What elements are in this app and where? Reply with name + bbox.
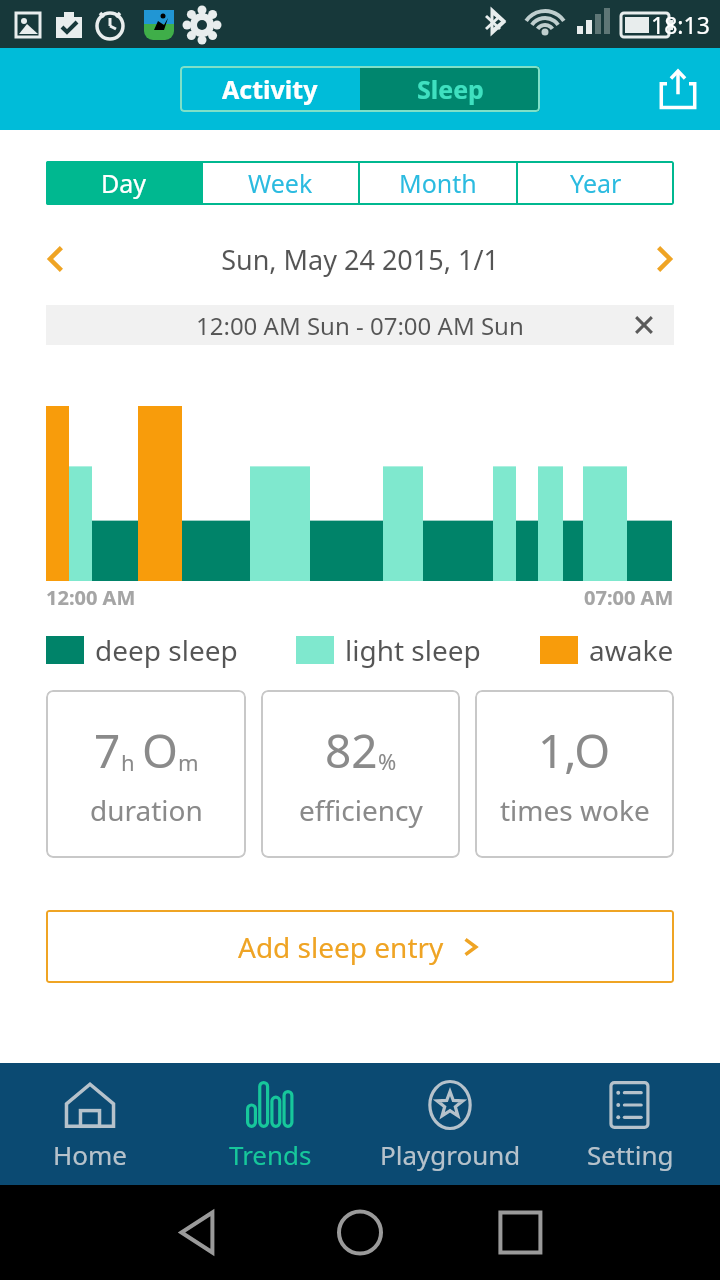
button[interactable]: 12:00 AM Sun - 07:00 AM Sun: [46, 305, 674, 345]
staticText: m: [178, 747, 199, 777]
button[interactable]: Day: [46, 161, 201, 205]
button[interactable]: Activity: [180, 66, 360, 112]
staticText: O: [142, 719, 178, 782]
staticText: 12:00 AM Sun - 07:00 AM Sun: [196, 309, 524, 342]
staticText: 18:13: [651, 9, 710, 40]
staticText: Activity: [222, 72, 318, 106]
button[interactable]: Sleep: [360, 66, 540, 112]
staticText: 1,O: [538, 719, 611, 782]
button[interactable]: Setting: [540, 1063, 720, 1185]
staticText: 7: [94, 719, 121, 782]
staticText: Home: [53, 1137, 127, 1172]
button[interactable]: Playground: [360, 1063, 540, 1185]
button[interactable]: 82: [261, 690, 460, 858]
button[interactable]: Next day: [644, 239, 684, 279]
staticText: awake: [589, 631, 674, 669]
staticText: 12:00 AM: [46, 584, 136, 611]
button[interactable]: Home: [0, 1063, 180, 1185]
button[interactable]: Add sleep entry: [46, 910, 674, 983]
staticText: Week: [248, 166, 313, 200]
button[interactable]: Year: [518, 161, 674, 205]
button[interactable]: Trends: [180, 1063, 360, 1185]
staticText: Sun, May 24 2015, 1/1: [76, 241, 644, 278]
staticText: 82: [325, 719, 378, 782]
staticText: Year: [570, 166, 622, 200]
button[interactable]: Clear range: [630, 311, 658, 339]
button[interactable]: Share: [656, 67, 700, 111]
button[interactable]: 7: [46, 690, 246, 858]
staticText: h: [121, 747, 135, 777]
button[interactable]: Previous day: [36, 239, 76, 279]
staticText: light sleep: [345, 631, 481, 669]
staticText: deep sleep: [95, 631, 238, 669]
staticText: times woke: [500, 791, 650, 829]
button[interactable]: Week: [203, 161, 358, 205]
staticText: Day: [101, 166, 147, 200]
staticText: Sleep: [417, 72, 484, 106]
staticText: Playground: [380, 1137, 521, 1172]
staticText: Setting: [587, 1137, 674, 1172]
staticText: 07:00 AM: [584, 584, 674, 611]
staticText: Add sleep entry: [238, 928, 444, 966]
staticText: duration: [90, 791, 203, 829]
staticText: Month: [399, 166, 477, 200]
staticText: efficiency: [299, 791, 423, 829]
button[interactable]: Month: [360, 161, 516, 205]
staticText: Trends: [229, 1137, 312, 1172]
staticText: %: [378, 746, 397, 776]
button[interactable]: 1,O: [475, 690, 674, 858]
